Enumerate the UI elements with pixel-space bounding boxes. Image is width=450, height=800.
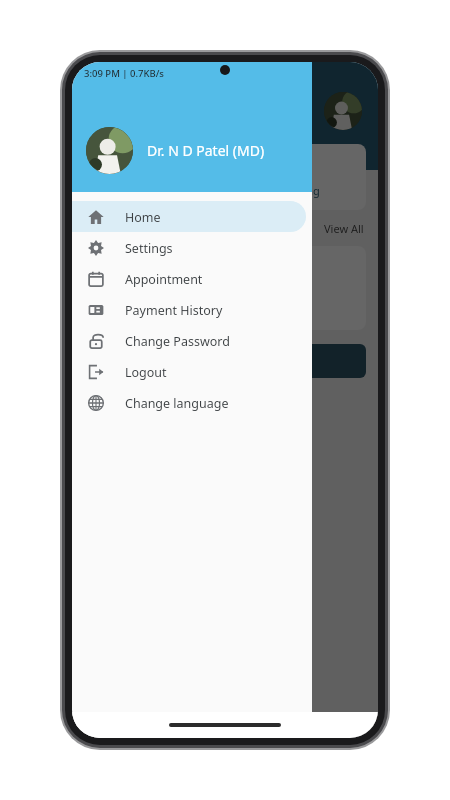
staticText: Pending (277, 183, 320, 198)
button[interactable]: Change Password (72, 325, 306, 356)
staticText: Change language (125, 395, 229, 412)
button[interactable]: Settings (72, 232, 306, 263)
staticText: Appointment (125, 271, 203, 288)
button[interactable]: Home (72, 201, 306, 232)
button[interactable]: Change language (72, 387, 306, 418)
staticText: Change Password (125, 333, 230, 350)
staticText: Completed (124, 183, 181, 198)
staticText: Upcoming (86, 220, 146, 236)
button[interactable]: Logout (72, 356, 306, 387)
staticText: Rahul Kumar (94, 277, 161, 292)
staticText: Settings (125, 240, 173, 257)
staticText: Dr. N D Patel (MD) (147, 141, 265, 160)
button[interactable]: Payment History (72, 294, 306, 325)
staticText: 3:09 PM | 0.7KB/s (84, 67, 164, 80)
staticText: View All (324, 221, 364, 236)
staticText: Home (125, 209, 161, 226)
staticText: Logout (125, 364, 167, 381)
button[interactable]: Appointment (72, 263, 306, 294)
staticText: Payment History (125, 302, 223, 319)
